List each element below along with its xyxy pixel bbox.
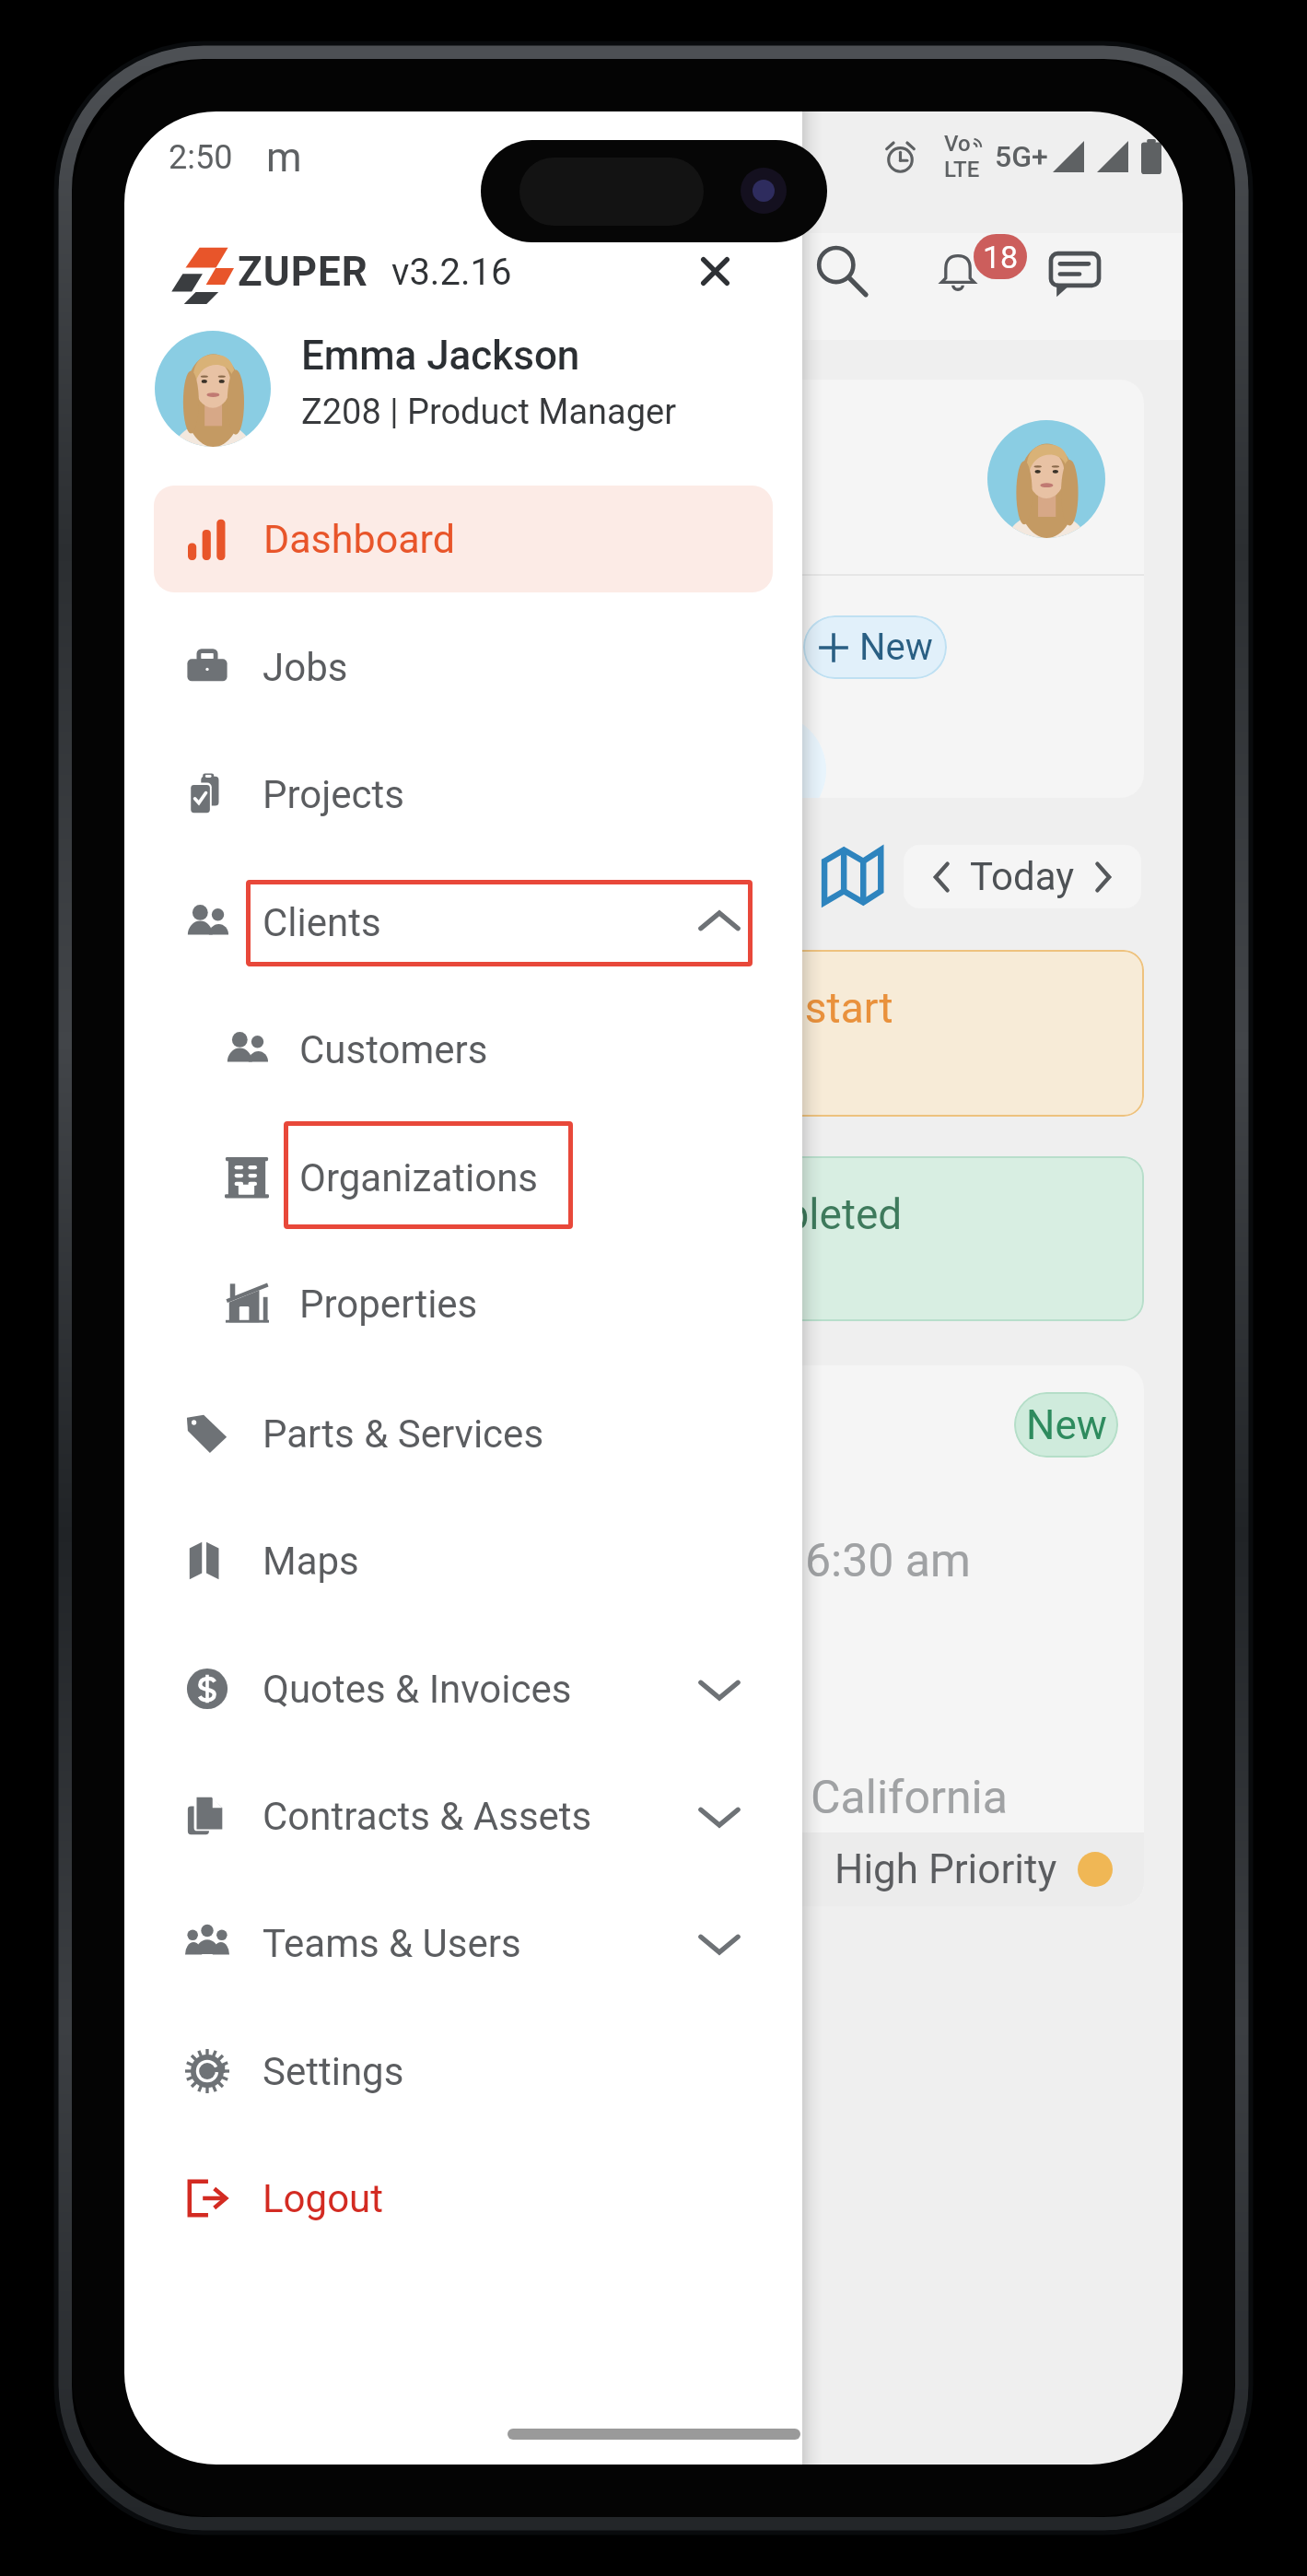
button[interactable]: Search: [790, 220, 893, 323]
staticText: New: [859, 626, 933, 669]
button[interactable]: Close menu: [671, 228, 759, 315]
staticText: Job start: [723, 983, 893, 1033]
staticText: Clients: [263, 900, 381, 945]
staticText: Vo: [944, 131, 971, 157]
button[interactable]: Job start: [148, 950, 1144, 1117]
button[interactable]: Teams & Users: [124, 1886, 802, 2000]
staticText: Maps: [263, 1539, 359, 1584]
staticText: Projects: [263, 772, 404, 817]
staticText: New: [1026, 1401, 1107, 1449]
staticText: LTE: [944, 157, 980, 182]
staticText: 2:50: [169, 138, 233, 177]
button[interactable]: Map view: [813, 837, 891, 915]
staticText: 6:30 am: [805, 1534, 971, 1588]
staticText: Parts & Services: [263, 1411, 544, 1457]
button[interactable]: Logout: [124, 2141, 802, 2255]
button[interactable]: Projects: [124, 737, 802, 851]
button[interactable]: Clients: [124, 865, 802, 979]
staticText: Teams & Users: [263, 1921, 521, 1966]
button[interactable]: New: [803, 615, 947, 679]
staticText: Jobs: [263, 645, 348, 690]
staticText: Customers: [299, 1027, 488, 1072]
staticText: v3.2.16: [391, 251, 512, 294]
button[interactable]: Dashboard: [154, 486, 773, 592]
staticText: Properties: [299, 1282, 478, 1327]
button[interactable]: Customers: [124, 992, 802, 1107]
button[interactable]: Notifications: [906, 220, 1009, 323]
button[interactable]: Completed: [148, 1156, 1144, 1321]
button[interactable]: Messages: [1023, 220, 1126, 323]
button[interactable]: Properties: [124, 1247, 802, 1361]
staticText: m: [266, 134, 302, 181]
staticText: Settings: [263, 2049, 404, 2094]
staticText: ZUPER: [238, 248, 369, 296]
button[interactable]: New: [148, 380, 1144, 798]
staticText: Completed: [696, 1189, 903, 1239]
button[interactable]: Organizations: [124, 1120, 802, 1235]
staticText: Z208 | Product Manager: [301, 392, 677, 433]
button[interactable]: Contracts & Assets: [124, 1759, 802, 1873]
staticText: California: [811, 1771, 1008, 1825]
button[interactable]: Settings: [124, 2014, 802, 2128]
staticText: Contracts & Assets: [263, 1794, 592, 1839]
staticText: Logout: [263, 2176, 384, 2221]
staticText: Today: [970, 854, 1075, 899]
button[interactable]: Today: [904, 845, 1141, 908]
staticText: Organizations: [299, 1155, 539, 1200]
button[interactable]: Quotes & Invoices: [124, 1632, 802, 1746]
staticText: Dashboard: [263, 516, 455, 562]
staticText: High Priority: [834, 1845, 1057, 1893]
staticText: Emma Jackson: [301, 332, 580, 380]
staticText: 5G+: [995, 139, 1048, 174]
button[interactable]: Parts & Services: [124, 1376, 802, 1491]
staticText: Quotes & Invoices: [263, 1667, 572, 1712]
button[interactable]: Jobs: [124, 610, 802, 724]
button[interactable]: New: [148, 1365, 1144, 1906]
button[interactable]: Maps: [124, 1504, 802, 1618]
staticText: 18: [983, 239, 1019, 275]
